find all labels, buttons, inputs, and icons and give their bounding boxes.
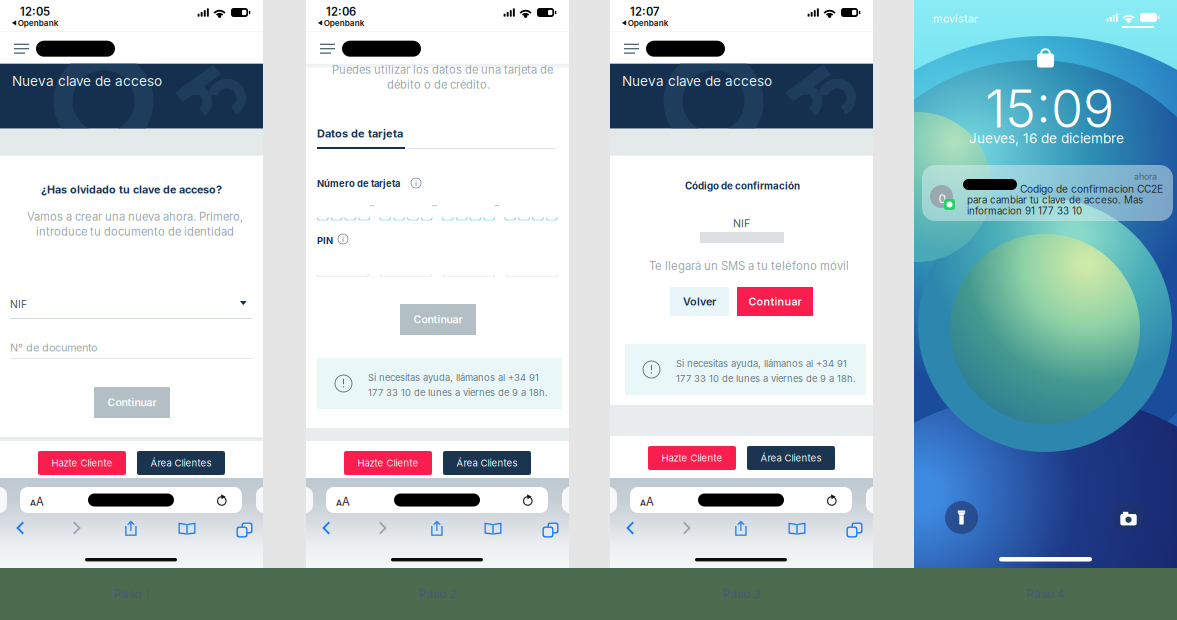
button[interactable]: Bookmarks: [478, 516, 508, 540]
staticText: ᴀA: [640, 495, 654, 509]
staticText: Paso 1: [113, 587, 149, 601]
staticText: 12:06: [326, 5, 356, 19]
staticText: Paso 2: [418, 587, 456, 601]
staticText: Te llegará un SMS a tu teléfono móvil: [649, 259, 849, 273]
staticText: Codigo de confirmacion CC2E: [1020, 183, 1163, 195]
staticText: Openbank: [18, 18, 59, 28]
button[interactable]: Volver: [670, 287, 729, 316]
button[interactable]: Bookmarks: [782, 516, 812, 540]
button[interactable]: Tabs: [227, 516, 257, 540]
staticText: Nueva clave de acceso: [622, 73, 772, 89]
staticText: ¿Has olvidado tu clave de acceso?: [41, 183, 222, 196]
staticText: para cambiar tu clave de acceso. Mas: [967, 194, 1143, 206]
staticText: Openbank: [628, 18, 669, 28]
staticText: ᴀA: [30, 495, 44, 509]
button[interactable]: Share: [116, 516, 146, 540]
staticText: Hazte Cliente: [51, 457, 112, 469]
staticText: 12:07: [630, 5, 659, 19]
staticText: 0: [938, 191, 946, 206]
button[interactable]: Forward: [368, 516, 398, 540]
staticText: Continuar: [748, 295, 801, 308]
button[interactable]: Back: [311, 516, 341, 540]
staticText: Paso 4: [1026, 587, 1065, 601]
staticText: Área Clientes: [456, 457, 517, 469]
staticText: Vamos a crear una nueva ahora. Primero,: [27, 210, 243, 223]
staticText: Área Clientes: [150, 457, 211, 469]
staticText: Número de tarjeta: [317, 178, 400, 189]
button[interactable]: Bookmarks: [172, 516, 202, 540]
button[interactable]: Hazte Cliente: [648, 446, 736, 470]
staticText: PIN: [317, 235, 333, 246]
button[interactable]: Área Clientes: [443, 451, 531, 475]
staticText: Paso 3: [722, 587, 760, 601]
staticText: Jueves, 16 de diciembre: [969, 130, 1124, 146]
button[interactable]: Área Clientes: [137, 451, 225, 475]
staticText: Área Clientes: [760, 452, 821, 464]
staticText: movistar: [933, 12, 978, 25]
button[interactable]: Hazte Cliente: [38, 451, 126, 475]
button[interactable]: Forward: [672, 516, 702, 540]
button[interactable]: Continuar: [400, 304, 476, 335]
staticText: Hazte Cliente: [661, 452, 722, 464]
staticText: 177 33 10 de lunes a viernes de 9 a 18h.: [676, 373, 856, 384]
staticText: débito o de crédito.: [387, 78, 490, 91]
button[interactable]: Camera: [1112, 501, 1145, 534]
staticText: 12:05: [20, 5, 50, 19]
staticText: Continuar: [413, 313, 462, 326]
staticText: 177 33 10 de lunes a viernes de 9 a 18h.: [368, 387, 548, 398]
button[interactable]: Tabs: [533, 516, 563, 540]
button[interactable]: Share: [422, 516, 452, 540]
staticText: ᴀA: [336, 495, 350, 509]
button[interactable]: Continuar: [94, 387, 170, 418]
button[interactable]: Flashlight: [945, 501, 978, 534]
staticText: Nueva clave de acceso: [12, 73, 162, 89]
staticText: Código de confirmación: [685, 180, 800, 192]
staticText: 15:09: [985, 77, 1114, 140]
staticText: Si necesitas ayuda, llámanos al +34 91: [676, 358, 847, 369]
button[interactable]: Continuar: [737, 287, 813, 316]
button[interactable]: Back: [5, 516, 35, 540]
button[interactable]: Menu: [618, 38, 645, 62]
staticText: Openbank: [324, 18, 365, 28]
staticText: Puedes utilizar los datos de una tarjeta…: [332, 63, 553, 76]
staticText: introduce tu documento de identidad: [36, 225, 234, 238]
staticText: Nº de documento: [10, 341, 97, 354]
staticText: NIF: [10, 298, 27, 310]
button[interactable]: Forward: [62, 516, 92, 540]
staticText: Continuar: [107, 396, 156, 409]
button[interactable]: Menu: [314, 38, 341, 62]
staticText: Hazte Cliente: [357, 457, 418, 469]
staticText: Datos de tarjeta: [317, 127, 403, 140]
button[interactable]: Tabs: [837, 516, 867, 540]
button[interactable]: Back: [615, 516, 645, 540]
staticText: ahora: [1134, 171, 1157, 182]
staticText: Si necesitas ayuda, llámanos al +34 91: [368, 372, 539, 383]
staticText: NIF: [733, 217, 750, 230]
button[interactable]: Hazte Cliente: [344, 451, 432, 475]
button[interactable]: Share: [726, 516, 756, 540]
button[interactable]: Menu: [8, 38, 35, 62]
staticText: informacion 91 177 33 10: [967, 205, 1082, 217]
staticText: Volver: [683, 295, 716, 308]
button[interactable]: Área Clientes: [747, 446, 835, 470]
